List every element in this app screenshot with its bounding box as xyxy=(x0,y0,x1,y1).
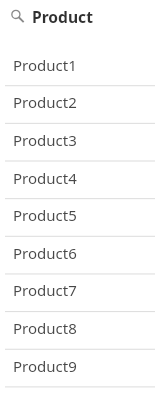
button[interactable]: Product2 xyxy=(0,85,155,123)
button[interactable]: Product3 xyxy=(0,123,155,161)
other: Search xyxy=(11,9,27,25)
button[interactable]: Product6 xyxy=(0,236,155,274)
staticText: Product2 xyxy=(13,92,77,112)
staticText: Product7 xyxy=(13,280,77,300)
staticText: Product4 xyxy=(13,168,77,188)
staticText: Product6 xyxy=(13,243,77,263)
staticText: Product9 xyxy=(13,356,77,376)
staticText: Product5 xyxy=(13,205,77,225)
staticText: Product1 xyxy=(13,55,77,75)
staticText: Product8 xyxy=(13,318,77,338)
button[interactable]: Search xyxy=(0,0,155,34)
button[interactable]: Product7 xyxy=(0,273,155,311)
button[interactable]: Product8 xyxy=(0,311,155,349)
button[interactable]: Product1 xyxy=(0,48,155,86)
button[interactable]: Product9 xyxy=(0,349,155,387)
staticText: Product3 xyxy=(13,130,77,150)
button[interactable]: Product4 xyxy=(0,161,155,199)
button[interactable]: Product5 xyxy=(0,198,155,236)
staticText: Product xyxy=(32,6,93,27)
